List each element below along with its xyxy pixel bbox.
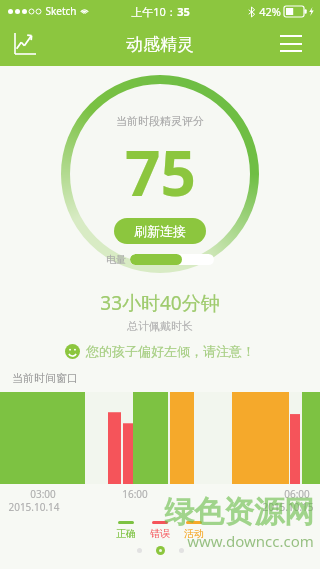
staticText: 当前时间窗口	[12, 371, 78, 385]
button[interactable]	[179, 548, 184, 553]
button[interactable]: 正确	[116, 521, 136, 540]
staticText: 2015.10.15	[262, 500, 314, 514]
staticText: 上午10：	[131, 4, 177, 19]
staticText: 错误	[150, 527, 170, 540]
button[interactable]: Menu	[274, 27, 308, 61]
staticText: Sketch	[45, 4, 77, 18]
staticText: 您的孩子偏好左倾，请注意！	[86, 343, 255, 359]
staticText: 活动	[184, 527, 204, 540]
staticText: 当前时段精灵评分	[116, 114, 204, 128]
staticText: 电量	[106, 253, 126, 266]
button[interactable]: 您的孩子偏好左倾，请注意！	[0, 343, 320, 359]
staticText: 总计佩戴时长	[127, 319, 193, 333]
staticText: 03:00	[30, 487, 56, 501]
staticText: 刷新连接	[134, 223, 186, 239]
staticText: 动感精灵	[126, 34, 194, 55]
staticText: 绿色资源网	[164, 493, 314, 531]
button[interactable]: 错误	[150, 521, 170, 540]
button[interactable]: 活动	[184, 521, 204, 540]
button[interactable]: Statistics	[10, 29, 40, 59]
staticText: 35	[177, 4, 190, 19]
button[interactable]	[137, 548, 142, 553]
staticText: 2015.10.14	[8, 500, 60, 514]
staticText: 75	[125, 130, 196, 214]
staticText: www.downcc.com	[187, 531, 314, 551]
staticText: 42%	[259, 4, 281, 19]
staticText: 33小时40分钟	[100, 290, 220, 316]
staticText: 06:00	[284, 487, 310, 501]
button[interactable]: 刷新连接	[114, 218, 206, 244]
button[interactable]	[156, 546, 165, 555]
staticText: 正确	[116, 527, 136, 540]
staticText: 16:00	[122, 487, 148, 501]
